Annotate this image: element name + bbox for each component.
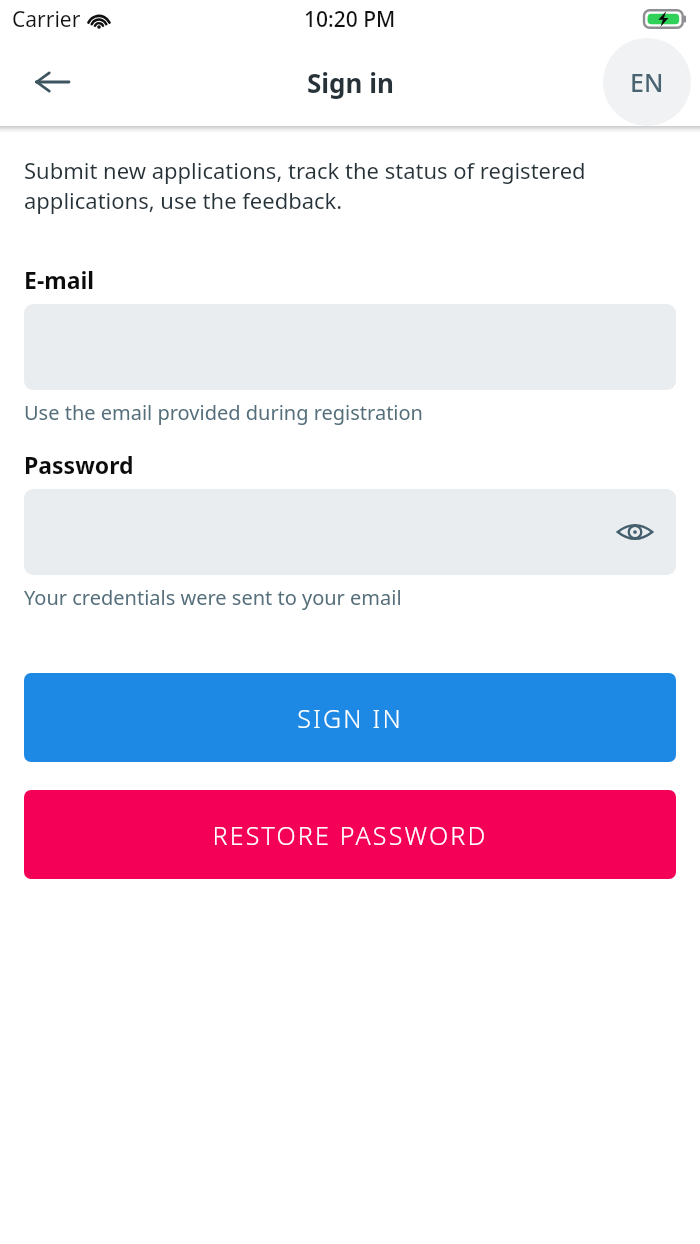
- staticText: Submit new applications, track the statu…: [24, 155, 676, 216]
- button[interactable]: RESTORE PASSWORD: [24, 790, 676, 879]
- staticText: Your credentials were sent to your email: [24, 584, 402, 611]
- button[interactable]: SIGN IN: [24, 673, 676, 762]
- staticText: Carrier: [12, 5, 81, 34]
- button[interactable]: Show password: [24, 489, 676, 575]
- staticText: Sign in: [307, 65, 394, 100]
- button[interactable]: Back: [18, 48, 86, 116]
- staticText: 10:20 PM: [304, 5, 396, 34]
- staticText: E-mail: [24, 264, 95, 295]
- button[interactable]: Show password: [608, 505, 662, 559]
- staticText: EN: [630, 65, 664, 99]
- staticText: Use the email provided during registrati…: [24, 399, 423, 426]
- staticText: SIGN IN: [297, 701, 403, 735]
- staticText: RESTORE PASSWORD: [212, 818, 488, 852]
- button[interactable]: EN: [603, 38, 691, 126]
- staticText: Password: [24, 449, 134, 480]
